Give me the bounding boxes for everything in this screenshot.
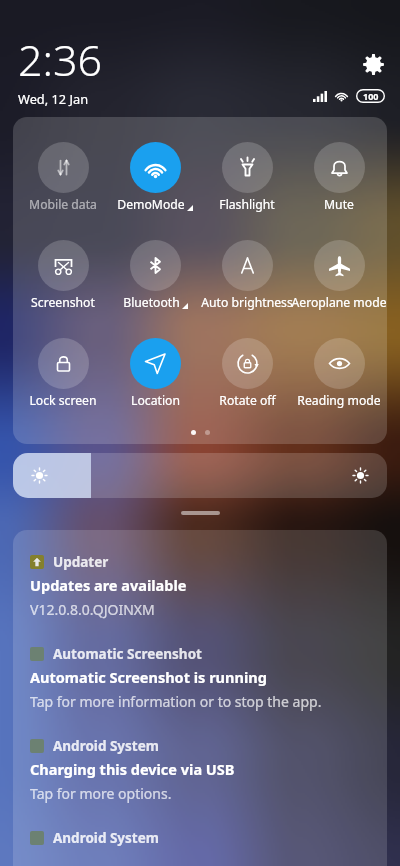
button[interactable]: Bluetooth: [109, 240, 201, 311]
staticText: V12.0.8.0.QJOINXM: [30, 600, 155, 619]
button[interactable]: Android System: [30, 737, 370, 755]
button[interactable]: Reading mode: [293, 338, 385, 409]
staticText: 100: [363, 90, 379, 102]
button[interactable]: Mobile data: [17, 142, 109, 213]
staticText: Android System: [53, 829, 159, 847]
staticText: Bluetooth: [123, 294, 180, 311]
staticText: Android System: [53, 737, 159, 755]
staticText: Screenshot: [31, 294, 95, 311]
staticText: Aeroplane mode: [291, 294, 387, 311]
button[interactable]: Mute: [293, 142, 385, 213]
button[interactable]: Updater: [30, 553, 370, 571]
staticText: Automatic Screenshot is running: [30, 667, 267, 687]
button[interactable]: Screenshot: [17, 240, 109, 311]
staticText: DemoMode: [117, 196, 185, 213]
staticText: Updates are available: [30, 575, 187, 595]
staticText: Mobile data: [29, 196, 97, 213]
staticText: 2:36: [18, 30, 103, 89]
staticText: Flashlight: [219, 196, 275, 213]
button[interactable]: Location: [109, 338, 201, 409]
button[interactable]: Settings: [363, 54, 384, 75]
button[interactable]: Brightness: [13, 453, 387, 498]
staticText: Reading mode: [297, 392, 381, 409]
staticText: Rotate off: [219, 392, 276, 409]
staticText: Wed, 12 Jan: [18, 90, 89, 107]
staticText: Mute: [324, 196, 354, 213]
staticText: Charging this device via USB: [30, 759, 235, 779]
staticText: Automatic Screenshot: [53, 645, 202, 663]
button[interactable]: Automatic Screenshot: [30, 645, 370, 663]
staticText: Tap for more information or to stop the …: [30, 692, 322, 711]
staticText: Auto brightness: [201, 294, 293, 311]
button[interactable]: Rotate off: [201, 338, 293, 409]
button[interactable]: Flashlight: [201, 142, 293, 213]
button[interactable]: Lock screen: [17, 338, 109, 409]
staticText: Tap for more options.: [30, 784, 172, 803]
staticText: Lock screen: [29, 392, 97, 409]
staticText: Location: [131, 392, 180, 409]
button[interactable]: Auto brightness: [201, 240, 293, 311]
staticText: Updater: [53, 553, 109, 571]
button[interactable]: Android System: [30, 829, 370, 847]
button[interactable]: DemoMode: [109, 142, 201, 213]
button[interactable]: Aeroplane mode: [293, 240, 385, 311]
